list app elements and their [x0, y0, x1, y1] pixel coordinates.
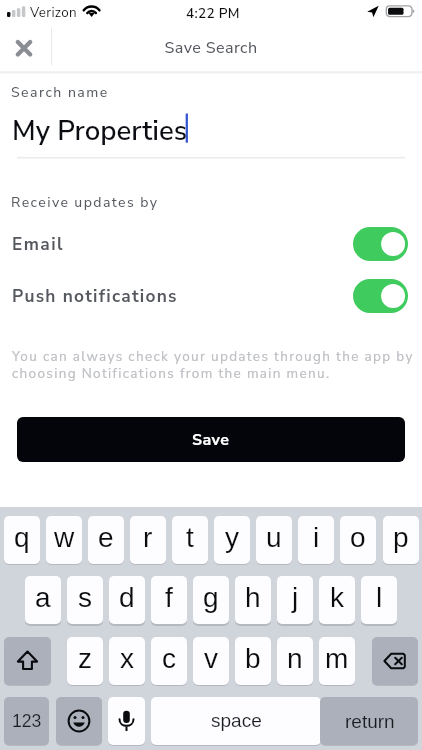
staticText: k — [330, 582, 344, 613]
button[interactable]: t — [172, 516, 208, 564]
staticText: v — [204, 643, 218, 674]
staticText: d — [119, 582, 135, 613]
staticText: e — [98, 522, 114, 553]
button[interactable]: Close — [0, 24, 52, 71]
staticText: You can always check your updates throug… — [12, 347, 422, 387]
staticText: y — [225, 522, 239, 553]
button[interactable]: m — [319, 637, 355, 685]
button[interactable]: return — [320, 697, 418, 745]
button[interactable]: Dictation — [108, 697, 145, 745]
button[interactable]: d — [109, 576, 145, 624]
button[interactable]: Numbers — [4, 697, 49, 745]
staticText: return — [345, 711, 395, 732]
staticText: l — [376, 582, 383, 613]
button[interactable]: q — [4, 516, 40, 564]
button[interactable]: z — [67, 637, 103, 685]
staticText: Push notifications — [12, 285, 178, 309]
staticText: r — [143, 522, 153, 553]
staticText: space — [211, 710, 262, 731]
staticText: m — [325, 643, 349, 674]
button[interactable]: Backspace — [372, 637, 418, 685]
button[interactable]: space — [151, 697, 321, 745]
button[interactable]: Emoji — [56, 697, 102, 745]
button[interactable]: b — [235, 637, 271, 685]
button[interactable]: j — [277, 576, 313, 624]
button[interactable]: s — [67, 576, 103, 624]
staticText: Receive updates by — [11, 193, 159, 212]
button[interactable]: c — [151, 637, 187, 685]
staticText: b — [245, 643, 261, 674]
staticText: My Properties — [12, 112, 188, 150]
staticText: f — [165, 582, 173, 613]
button[interactable]: n — [277, 637, 313, 685]
staticText: g — [203, 582, 219, 613]
button[interactable]: g — [193, 576, 229, 624]
staticText: z — [78, 643, 92, 674]
staticText: Email — [12, 233, 64, 257]
staticText: q — [14, 522, 30, 553]
staticText: Save Search — [0, 37, 422, 59]
staticText: h — [245, 582, 261, 613]
button[interactable]: h — [235, 576, 271, 624]
staticText: a — [35, 582, 51, 613]
button[interactable]: o — [340, 516, 376, 564]
staticText: t — [186, 522, 194, 553]
staticText: p — [393, 522, 409, 553]
staticText: i — [313, 522, 320, 553]
button[interactable]: w — [46, 516, 82, 564]
button[interactable]: r — [130, 516, 166, 564]
staticText: 4:22 PM — [186, 4, 240, 23]
staticText: Save — [192, 429, 230, 451]
staticText: s — [78, 582, 92, 613]
button[interactable]: Toggle on — [353, 227, 408, 261]
button[interactable]: u — [256, 516, 292, 564]
button[interactable]: Shift — [4, 637, 51, 685]
button[interactable]: f — [151, 576, 187, 624]
staticText: j — [292, 582, 299, 613]
button[interactable]: v — [193, 637, 229, 685]
button[interactable]: l — [361, 576, 397, 624]
button[interactable]: i — [298, 516, 334, 564]
staticText: w — [54, 522, 75, 553]
button[interactable]: y — [214, 516, 250, 564]
staticText: x — [120, 643, 134, 674]
staticText: Verizon — [30, 3, 78, 21]
staticText: o — [350, 522, 366, 553]
button[interactable]: e — [88, 516, 124, 564]
button[interactable]: Toggle on — [353, 279, 408, 313]
staticText: Search name — [11, 83, 109, 102]
button[interactable]: k — [319, 576, 355, 624]
staticText: 123 — [12, 711, 42, 731]
staticText: c — [162, 643, 176, 674]
button[interactable]: p — [383, 516, 419, 564]
button[interactable]: a — [25, 576, 61, 624]
staticText: n — [287, 643, 303, 674]
staticText: u — [266, 522, 282, 553]
button[interactable]: x — [109, 637, 145, 685]
button[interactable]: Save — [17, 417, 405, 462]
